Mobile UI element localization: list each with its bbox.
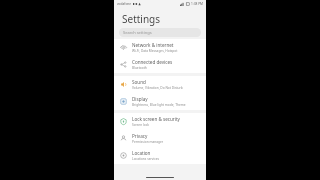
staticText: Permission manager	[132, 140, 164, 144]
staticText: 1:38 PM	[191, 2, 203, 6]
staticText: vodafone	[117, 2, 132, 6]
button[interactable]: Lock screen & security	[114, 113, 206, 130]
button[interactable]: Connected devices	[114, 56, 206, 73]
button[interactable]: Network & internet	[114, 39, 206, 56]
staticText: Lock screen & security	[132, 116, 180, 122]
staticText: Locations services	[132, 157, 160, 161]
button[interactable]: Location	[114, 147, 206, 164]
button[interactable]: Privacy	[114, 130, 206, 147]
button[interactable]: Sound	[114, 76, 206, 93]
staticText: Bluetooth	[132, 66, 147, 70]
staticText: Network & internet	[132, 42, 174, 48]
staticText: Wi-Fi, Data Messages, Hotspot	[132, 49, 178, 53]
staticText: Connected devices	[132, 59, 173, 65]
staticText: Location	[132, 150, 151, 156]
staticText: Volume, Vibration, Do Not Disturb	[132, 86, 183, 90]
staticText: Search settings	[123, 30, 152, 35]
staticText: Brightness, Blue light mode, Theme	[132, 103, 186, 107]
button[interactable]: Search settings	[119, 28, 201, 37]
staticText: Settings	[122, 12, 161, 26]
staticText: Privacy	[132, 133, 148, 139]
staticText: Display	[132, 96, 148, 102]
staticText: Sound	[132, 79, 146, 85]
staticText: Screen lock	[132, 123, 149, 127]
button[interactable]: Display	[114, 93, 206, 110]
